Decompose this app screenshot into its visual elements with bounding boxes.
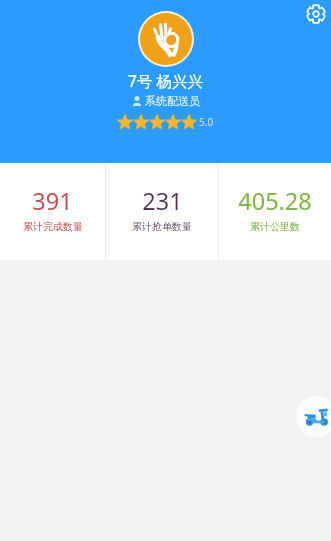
button[interactable]: Start delivery bbox=[296, 396, 331, 437]
staticText: 5.0 bbox=[199, 115, 214, 129]
staticText: 累计完成数量 bbox=[23, 220, 83, 233]
button[interactable]: Settings bbox=[303, 1, 329, 27]
button[interactable]: 405.28 bbox=[219, 163, 331, 260]
staticText: 391 bbox=[32, 185, 73, 217]
staticText: 7号 杨兴兴 bbox=[128, 70, 203, 91]
staticText: 405.28 bbox=[238, 185, 312, 217]
staticText: 累计抢单数量 bbox=[132, 220, 192, 233]
staticText: 231 bbox=[142, 185, 183, 217]
button[interactable]: 231 bbox=[106, 163, 218, 260]
staticText: 累计公里数 bbox=[250, 220, 300, 233]
button[interactable]: 391 bbox=[0, 163, 105, 260]
staticText: 系统配送员 bbox=[145, 94, 200, 108]
